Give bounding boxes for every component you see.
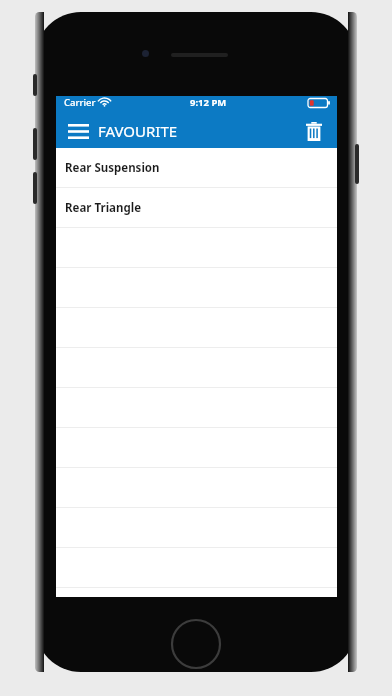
button[interactable]: Rear Suspension — [56, 148, 337, 188]
button[interactable]: FAVOURITE — [98, 121, 178, 141]
staticText: 9:12 PM — [190, 96, 227, 109]
button[interactable]: Delete all favourites — [299, 116, 329, 146]
staticText: Carrier — [64, 96, 96, 109]
staticText: Rear Triangle — [65, 200, 141, 216]
staticText: FAVOURITE — [98, 121, 178, 141]
button[interactable]: Open navigation menu — [63, 116, 93, 146]
button[interactable]: Home — [170, 618, 222, 670]
staticText: Rear Suspension — [65, 160, 160, 176]
button[interactable]: Rear Triangle — [56, 188, 337, 228]
